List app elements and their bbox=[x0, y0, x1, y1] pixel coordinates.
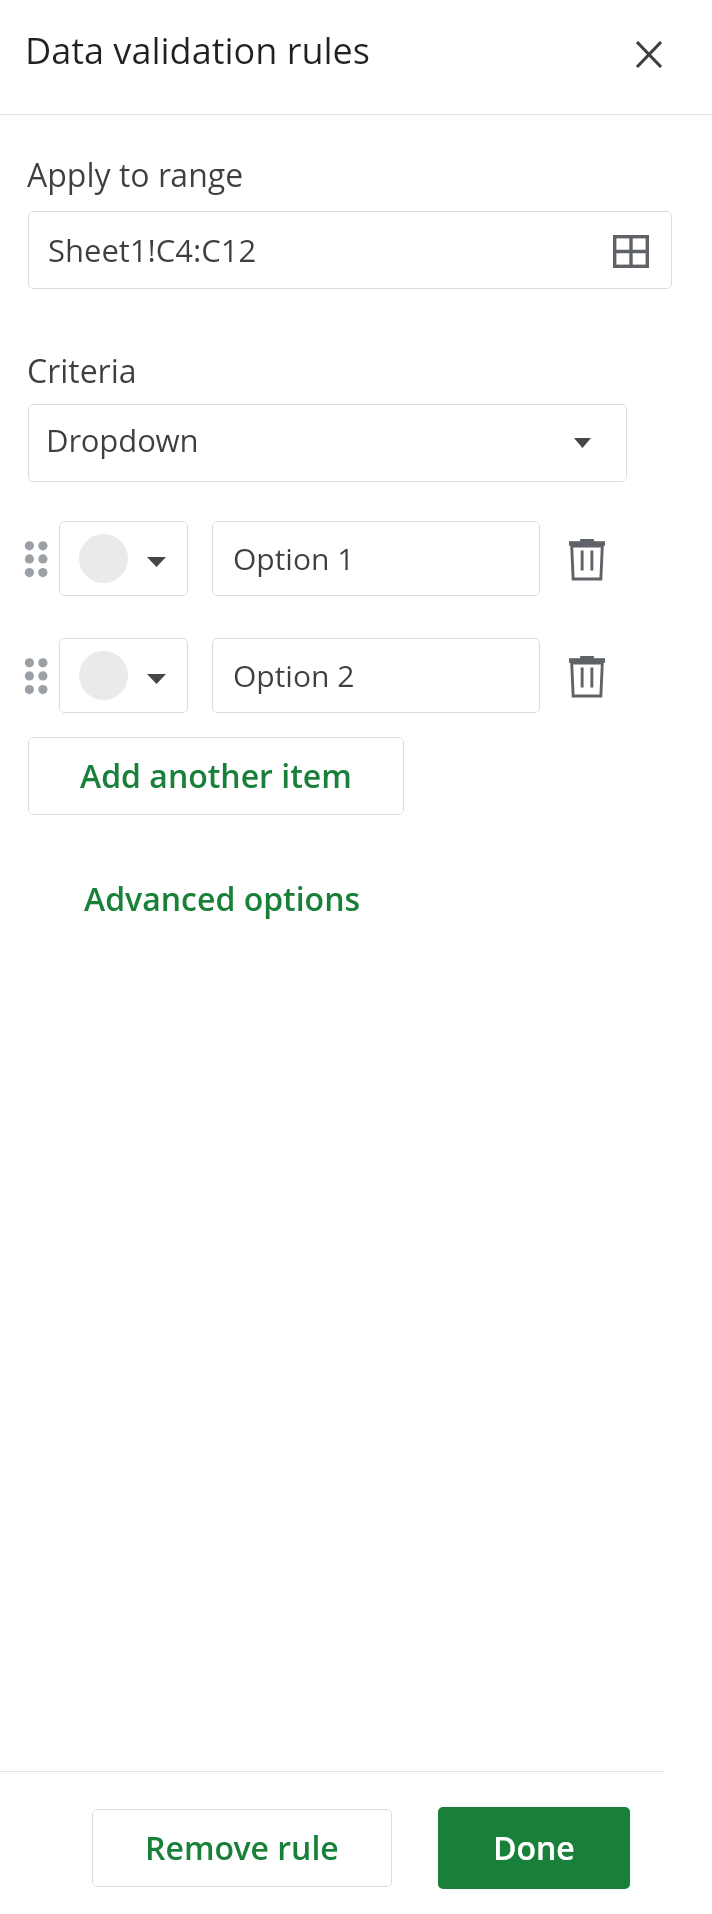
staticText: Done bbox=[493, 1826, 575, 1870]
button[interactable]: Option 2 bbox=[212, 638, 540, 713]
staticText: Data validation rules bbox=[25, 26, 370, 75]
button[interactable]: Close bbox=[613, 18, 685, 90]
staticText: Option 2 bbox=[233, 655, 355, 696]
staticText: Add another item bbox=[80, 754, 352, 798]
staticText: Remove rule bbox=[145, 1826, 339, 1870]
other: Reorder item bbox=[24, 540, 48, 577]
button[interactable]: Select data range bbox=[606, 225, 656, 275]
button[interactable]: Delete item bbox=[554, 643, 619, 708]
button[interactable]: Delete item bbox=[554, 526, 619, 591]
button[interactable]: Option 1 bbox=[212, 521, 540, 596]
button[interactable]: Dropdown bbox=[28, 404, 627, 482]
staticText: Criteria bbox=[27, 349, 137, 393]
button[interactable]: Add another item bbox=[28, 737, 404, 815]
button[interactable]: Choose color bbox=[59, 638, 188, 713]
button[interactable]: Sheet1!C4:C12 bbox=[28, 211, 672, 289]
staticText: Option 1 bbox=[233, 538, 355, 579]
staticText: Apply to range bbox=[27, 153, 244, 197]
staticText: Advanced options bbox=[84, 877, 361, 921]
button[interactable]: Advanced options bbox=[60, 865, 385, 933]
staticText: Sheet1!C4:C12 bbox=[48, 229, 257, 271]
button[interactable]: Choose color bbox=[59, 521, 188, 596]
other: Reorder item bbox=[24, 657, 48, 694]
button[interactable]: Done bbox=[438, 1807, 630, 1889]
staticText: Dropdown bbox=[46, 419, 199, 461]
button[interactable]: Remove rule bbox=[92, 1809, 392, 1887]
